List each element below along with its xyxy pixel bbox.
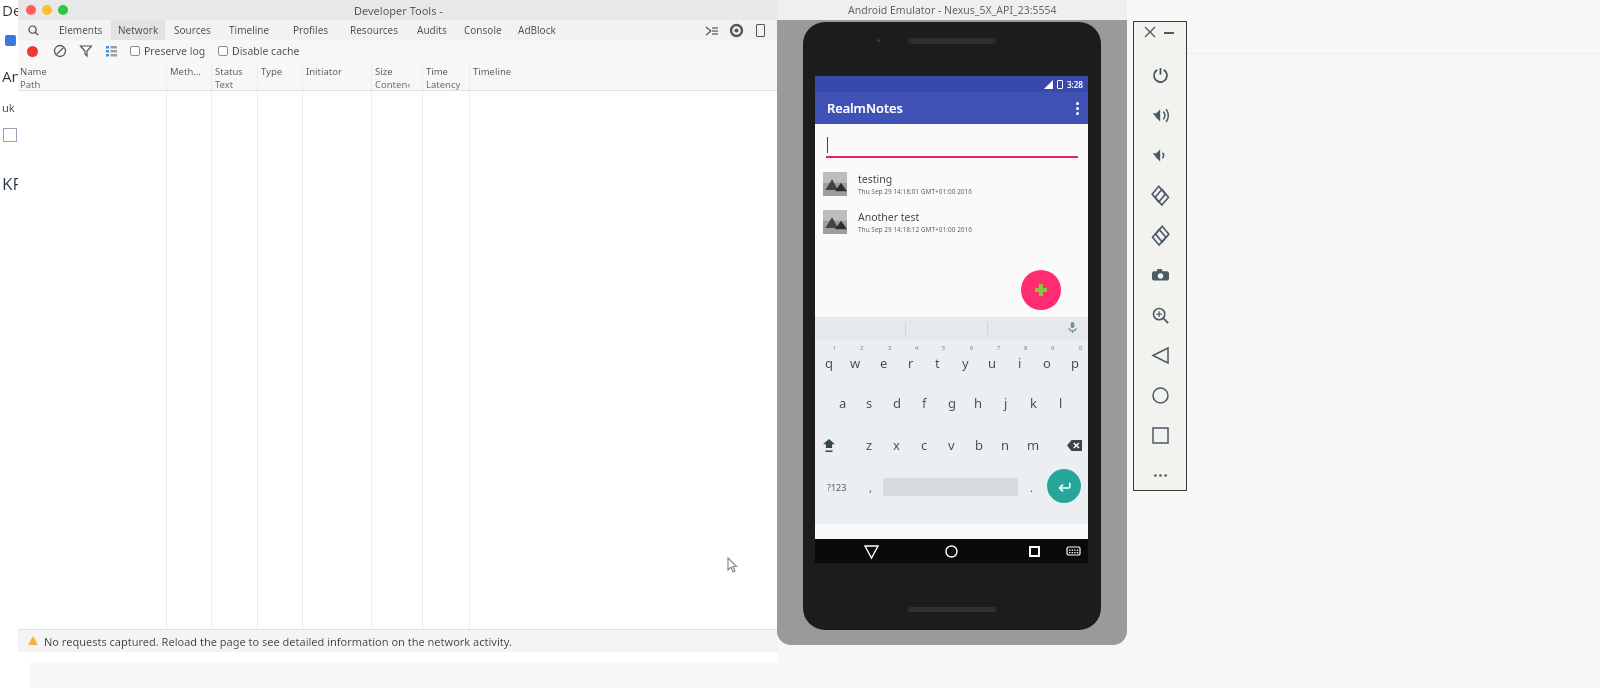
staticText: Latency — [426, 78, 461, 91]
button[interactable]: Filter — [80, 45, 92, 57]
staticText: Meth... — [170, 65, 201, 78]
button[interactable]: Another test — [823, 204, 1078, 240]
button[interactable]: 5 — [924, 340, 951, 382]
button[interactable]: l — [1047, 382, 1074, 424]
button[interactable]: 6 — [952, 340, 979, 382]
staticText: Type — [261, 65, 283, 78]
staticText: Text — [215, 78, 234, 91]
button[interactable]: m — [1020, 424, 1047, 466]
button[interactable]: k — [1020, 382, 1047, 424]
button[interactable]: z — [856, 424, 883, 466]
staticText: Disable cache — [232, 44, 300, 58]
staticText: De — [2, 0, 22, 20]
button[interactable]: Back — [1133, 335, 1187, 375]
button[interactable]: Home — [945, 545, 958, 558]
staticText: x — [893, 436, 900, 454]
button[interactable]: Rotate right — [1133, 215, 1187, 255]
button[interactable]: 1 — [815, 340, 842, 382]
button[interactable]: Screenshot — [1133, 255, 1187, 295]
button[interactable]: Volume down — [1133, 135, 1187, 175]
staticText: . — [1030, 480, 1033, 495]
button[interactable]: Resources — [341, 20, 408, 40]
button[interactable]: Dock — [756, 24, 765, 37]
button[interactable]: 3 — [870, 340, 897, 382]
button[interactable]: . — [1020, 466, 1042, 508]
button[interactable]: Audits — [408, 20, 456, 40]
button[interactable]: Close — [1145, 27, 1155, 37]
button[interactable]: Switch keyboard — [1067, 545, 1080, 558]
button[interactable]: Backspace — [1061, 424, 1088, 466]
button[interactable]: 0 — [1061, 340, 1088, 382]
staticText: k — [1030, 394, 1037, 412]
button[interactable]: Overview — [1133, 415, 1187, 455]
staticText: Preserve log — [144, 44, 206, 58]
button[interactable]: 2 — [842, 340, 869, 382]
staticText: Conten‹ — [375, 78, 411, 91]
button[interactable]: Zoom — [1133, 295, 1187, 335]
button[interactable]: g — [938, 382, 965, 424]
button[interactable]: n — [992, 424, 1019, 466]
staticText: h — [974, 394, 983, 412]
button[interactable]: v — [938, 424, 965, 466]
button[interactable]: c — [911, 424, 938, 466]
button[interactable]: Profiles — [280, 20, 341, 40]
button[interactable]: Recents — [1029, 546, 1040, 557]
button[interactable]: Enter — [1047, 469, 1081, 503]
button[interactable]: Voice input — [1067, 322, 1078, 333]
staticText: b — [975, 436, 983, 454]
staticText: RealmNotes — [827, 99, 903, 117]
button[interactable]: Record — [27, 46, 38, 57]
button[interactable]: Rotate left — [1133, 175, 1187, 215]
staticText: Resources — [350, 23, 399, 37]
button[interactable]: d — [883, 382, 910, 424]
button[interactable]: 7 — [979, 340, 1006, 382]
button[interactable]: 8 — [1006, 340, 1033, 382]
button[interactable]: Close — [26, 5, 36, 15]
button[interactable]: Preserve log — [130, 44, 206, 58]
button[interactable]: More — [1133, 455, 1187, 495]
button[interactable]: testing — [823, 166, 1078, 202]
staticText: uk — [2, 100, 15, 115]
staticText: l — [1059, 394, 1063, 412]
staticText: d — [893, 394, 901, 412]
staticText: Path — [20, 78, 41, 91]
button[interactable]: 9 — [1033, 340, 1060, 382]
button[interactable]: b — [965, 424, 992, 466]
button[interactable]: Back — [865, 545, 878, 558]
button[interactable]: Timeline — [219, 20, 280, 40]
button[interactable]: x — [883, 424, 910, 466]
staticText: 5 — [942, 344, 946, 351]
button[interactable]: Volume up — [1133, 95, 1187, 135]
staticText: Another test — [858, 210, 920, 224]
button[interactable]: AdBlock — [510, 20, 564, 40]
button[interactable]: 4 — [897, 340, 924, 382]
button[interactable]: Network — [111, 20, 165, 40]
button[interactable]: Shift — [815, 424, 842, 466]
button[interactable]: s — [856, 382, 883, 424]
button[interactable]: Zoom — [58, 5, 68, 15]
button[interactable]: Add note — [1021, 270, 1061, 310]
button[interactable]: Elements — [50, 20, 111, 40]
button[interactable]: , — [859, 466, 881, 508]
button[interactable]: a — [829, 382, 856, 424]
button[interactable]: Clear — [54, 45, 66, 57]
button[interactable]: h — [965, 382, 992, 424]
button[interactable]: Console — [456, 20, 510, 40]
button[interactable]: Power — [1133, 55, 1187, 95]
staticText: 3 — [888, 344, 892, 351]
button[interactable]: Minimize — [42, 5, 52, 15]
staticText: Sources — [174, 23, 211, 37]
button[interactable]: Disable cache — [218, 44, 300, 58]
button[interactable]: More options — [1076, 102, 1079, 115]
button[interactable] — [826, 136, 1078, 158]
button[interactable]: f — [911, 382, 938, 424]
staticText: Timeline — [473, 65, 512, 78]
button[interactable]: ?123 — [817, 466, 857, 508]
button[interactable]: Home — [1133, 375, 1187, 415]
button[interactable]: Settings — [730, 24, 743, 37]
button[interactable]: Sources — [165, 20, 219, 40]
staticText: ?123 — [827, 481, 847, 493]
button[interactable]: j — [992, 382, 1019, 424]
